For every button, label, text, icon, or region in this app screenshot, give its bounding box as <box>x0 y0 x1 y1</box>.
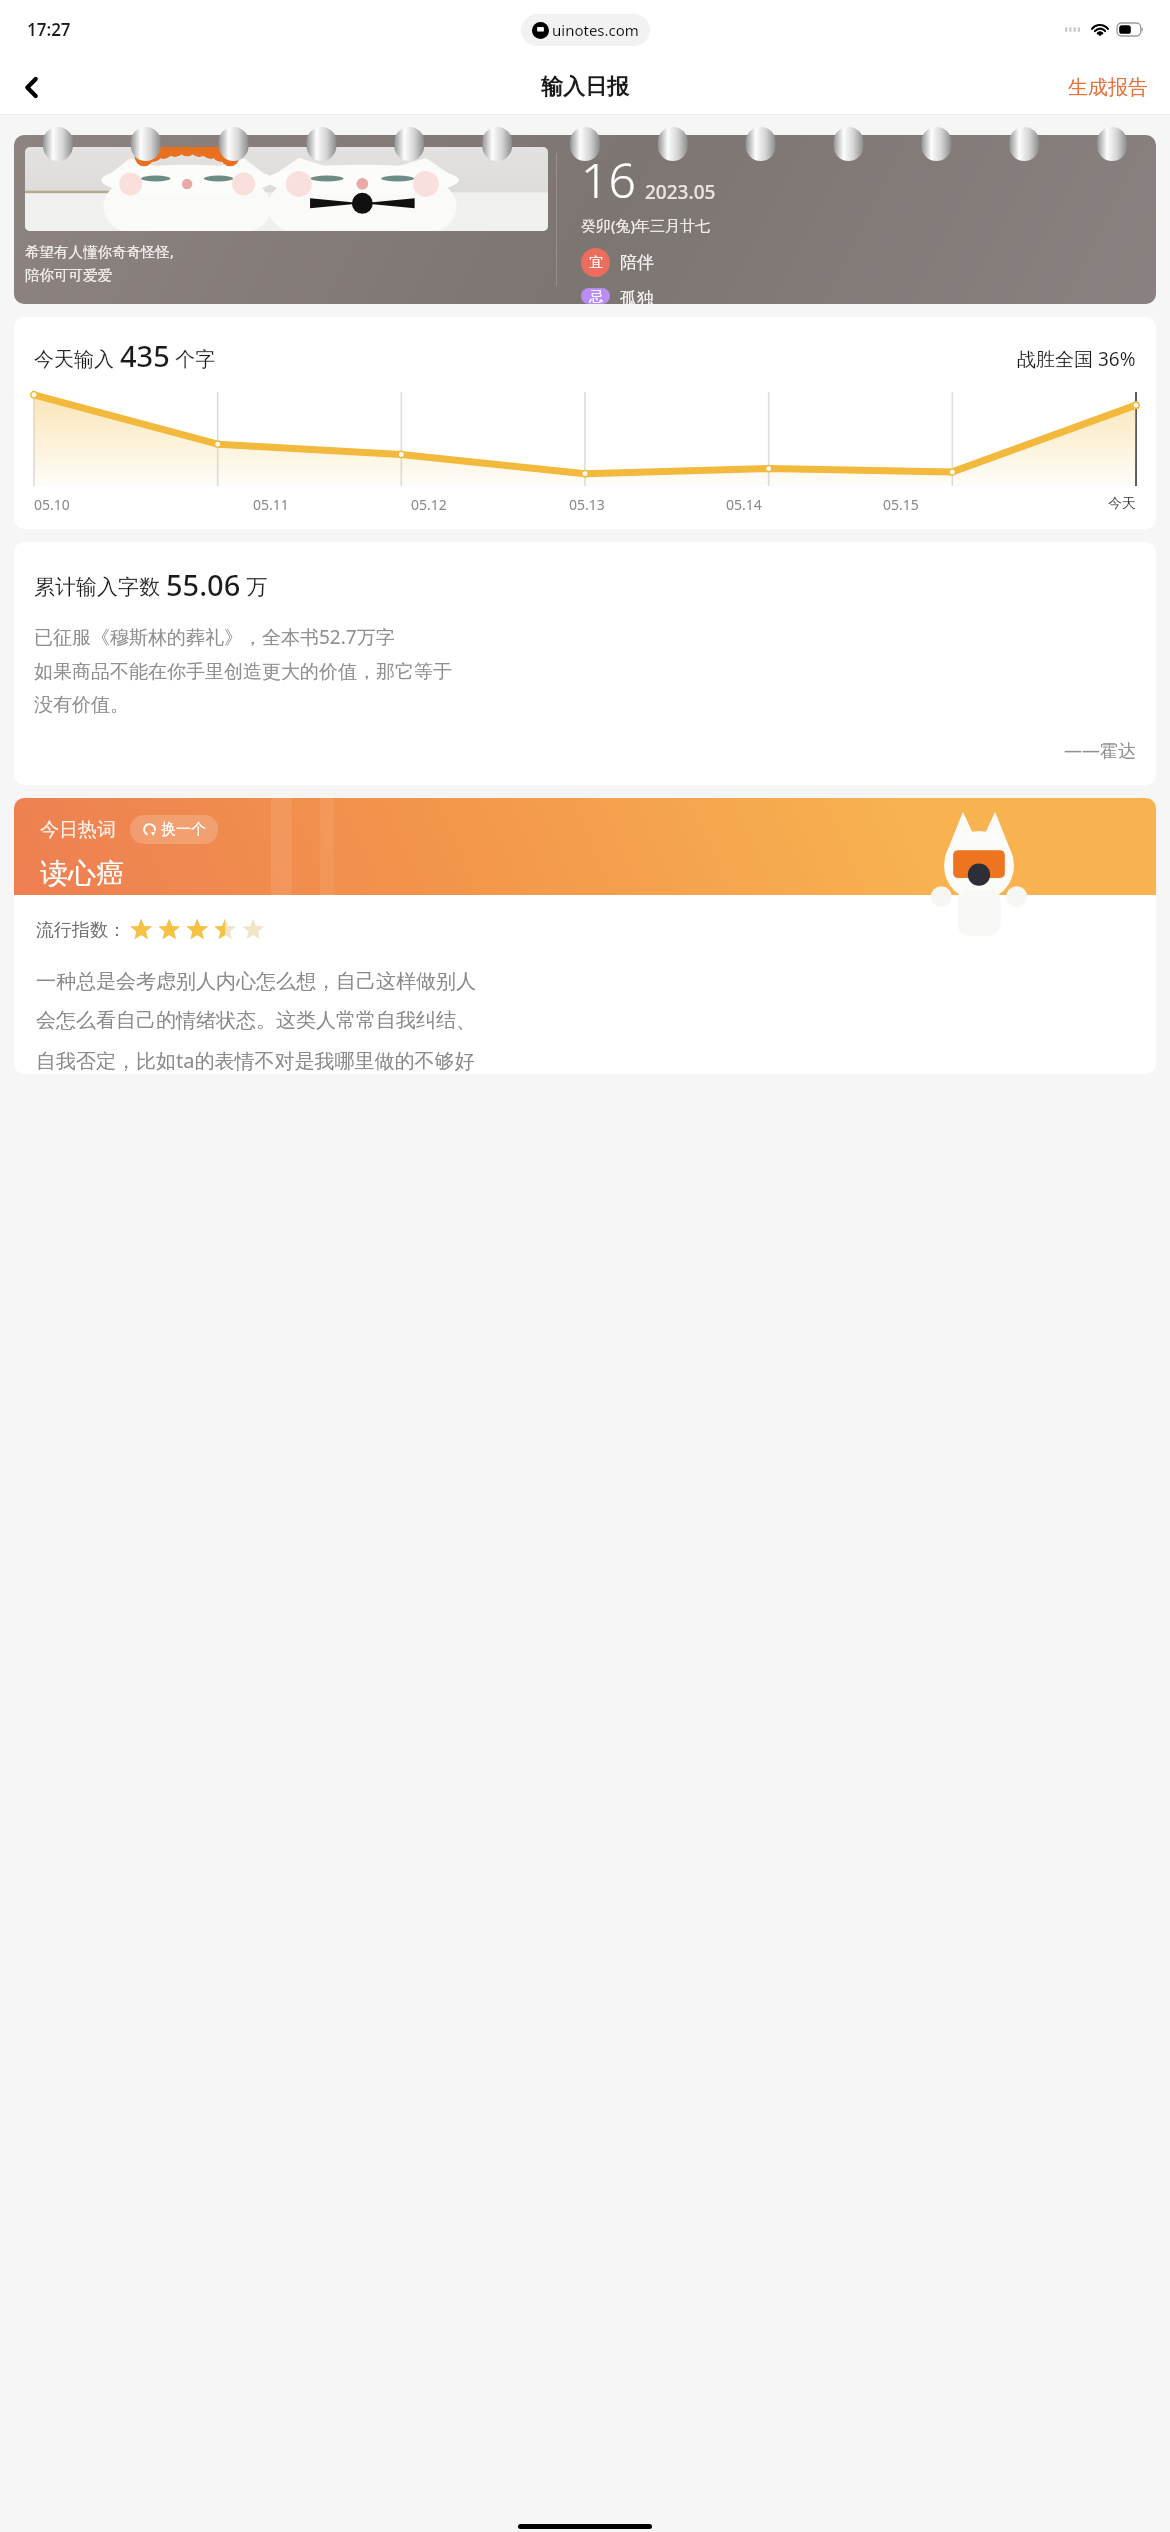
staticText: 一种总是会考虑别人内心怎么想，自己这样做别人 会怎么看自己的情绪状态。这类人常常… <box>36 969 476 1074</box>
staticText: 宜 <box>589 254 603 272</box>
staticText: 16 <box>581 147 636 212</box>
staticText: 今天输入 <box>34 345 120 372</box>
button[interactable]: 今日热词 <box>14 798 1156 895</box>
staticText: 战胜全国 36% <box>1017 346 1136 372</box>
staticText: 换一个 <box>161 820 206 839</box>
button[interactable]: 累计输入字数 <box>14 542 1156 785</box>
staticText: 17:27 <box>27 18 71 41</box>
staticText: 流行指数： <box>36 919 126 942</box>
staticText: 05.13 <box>569 495 605 514</box>
staticText: 孤独 <box>620 288 654 304</box>
staticText: 累计输入字数 <box>34 572 166 601</box>
staticText: 已征服《穆斯林的葬礼》，全本书52.7万字 如果商品不能在你手里创造更大的价值，… <box>34 624 452 716</box>
staticText: 生成报告 <box>1068 75 1148 100</box>
button[interactable]: 希望有人懂你奇奇怪怪, <box>14 135 1156 304</box>
staticText: 读心癌 <box>40 856 124 891</box>
staticText: 05.12 <box>411 495 447 514</box>
staticText: 今日热词 <box>40 818 116 842</box>
staticText: uinotes.com <box>552 20 639 40</box>
staticText: 癸卯(兔)年三月廿七 <box>581 215 711 235</box>
staticText: 05.10 <box>34 495 70 514</box>
staticText: 忌 <box>589 288 603 304</box>
staticText: 个字 <box>170 345 216 372</box>
button[interactable]: 换一个 <box>130 815 218 844</box>
button[interactable]: 今天输入 <box>14 317 1156 529</box>
staticText: 05.14 <box>726 495 762 514</box>
staticText: 2023.05 <box>645 179 716 205</box>
button[interactable]: Back <box>5 61 57 113</box>
staticText: 陪你可可爱爱 <box>25 266 112 284</box>
staticText: 输入日报 <box>541 73 629 101</box>
staticText: 435 <box>120 336 170 375</box>
staticText: 陪伴 <box>620 252 654 273</box>
staticText: 55.06 <box>166 565 241 604</box>
button[interactable]: 生成报告 <box>1046 63 1170 112</box>
staticText: 万 <box>241 572 268 601</box>
staticText: 05.15 <box>883 495 919 514</box>
staticText: 今天 <box>1108 495 1136 513</box>
staticText: 希望有人懂你奇奇怪怪, <box>25 241 174 261</box>
staticText: ——霍达 <box>1064 738 1136 763</box>
staticText: 05.11 <box>253 495 289 514</box>
